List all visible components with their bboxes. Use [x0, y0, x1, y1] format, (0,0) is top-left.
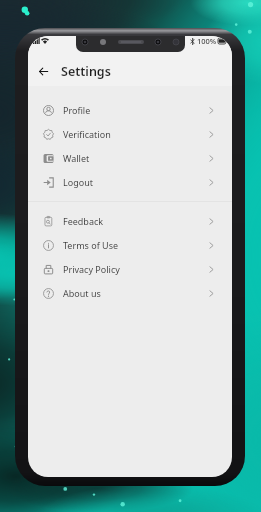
button[interactable]: Privacy Policy	[28, 257, 232, 281]
staticText: 100%	[197, 36, 217, 46]
staticText: About us	[63, 287, 101, 299]
staticText: Feedback	[63, 215, 104, 227]
button[interactable]: Verification	[28, 122, 232, 146]
staticText: Verification	[63, 128, 111, 140]
button[interactable]: Wallet	[28, 146, 232, 170]
staticText: Privacy Policy	[63, 263, 120, 275]
button[interactable]: Feedback	[28, 209, 232, 233]
button[interactable]: Profile	[28, 98, 232, 122]
button[interactable]: Terms of Use	[28, 233, 232, 257]
button[interactable]: About us	[28, 281, 232, 305]
staticText: Settings	[61, 63, 111, 80]
button[interactable]: Logout	[28, 170, 232, 194]
button[interactable]: Back	[33, 61, 54, 82]
staticText: Terms of Use	[63, 239, 119, 251]
staticText: Logout	[63, 176, 93, 188]
staticText: Wallet	[63, 152, 90, 164]
staticText: Profile	[63, 104, 91, 116]
